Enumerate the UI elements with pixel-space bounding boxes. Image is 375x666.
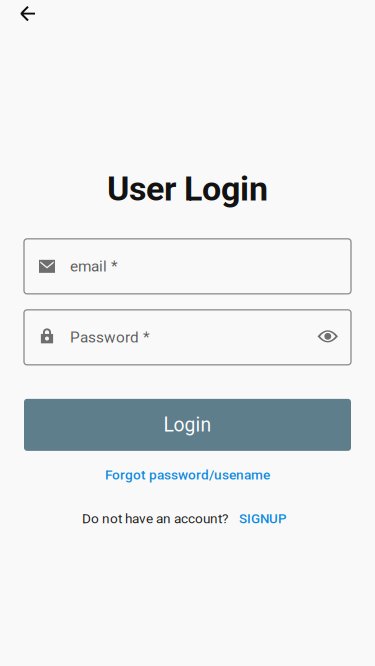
staticText: Password *	[70, 328, 150, 346]
staticText: Do not have an account?	[82, 511, 228, 526]
staticText: Login	[163, 413, 211, 436]
button[interactable]: SIGNUP	[228, 507, 293, 530]
staticText: SIGNUP	[239, 511, 287, 526]
staticText: email *	[70, 257, 118, 275]
staticText: User Login	[107, 169, 268, 209]
button[interactable]: Show password	[313, 323, 342, 352]
staticText: Forgot password/usename	[105, 467, 270, 483]
button[interactable]: Login	[24, 399, 351, 451]
button[interactable]: Back	[0, 0, 51, 37]
button[interactable]: Forgot password/usename	[24, 462, 351, 488]
